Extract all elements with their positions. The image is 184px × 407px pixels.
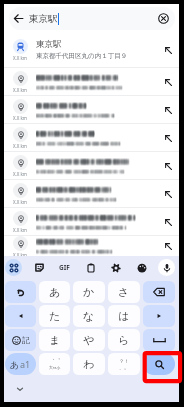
button[interactable]: X.X km bbox=[4, 124, 179, 151]
staticText: ま bbox=[49, 333, 61, 347]
button[interactable]: Move cursor left bbox=[5, 305, 36, 327]
button[interactable]: Back bbox=[9, 7, 175, 30]
staticText: X.X km bbox=[13, 143, 27, 149]
button[interactable]: Insert suggestion bbox=[157, 211, 179, 233]
button[interactable]: X.X km bbox=[4, 68, 179, 95]
button[interactable]: Punctuation bbox=[108, 353, 140, 375]
button[interactable]: は bbox=[108, 305, 140, 327]
button[interactable]: Stickers bbox=[31, 259, 48, 276]
staticText: や bbox=[83, 333, 95, 347]
button[interactable]: さ bbox=[108, 281, 140, 303]
staticText: あ bbox=[49, 285, 61, 299]
button[interactable]: ま bbox=[39, 329, 70, 351]
button[interactable]: な bbox=[73, 305, 105, 327]
button[interactable]: Space bbox=[143, 329, 175, 351]
staticText: あ bbox=[10, 359, 20, 370]
button[interactable]: X.X km bbox=[4, 180, 179, 207]
button[interactable]: Hide keyboard bbox=[4, 375, 179, 402]
staticText: ゛゜ bbox=[49, 358, 61, 365]
staticText: X.X km bbox=[13, 199, 27, 205]
staticText: X.X km bbox=[13, 227, 27, 233]
staticText: 東京都千代田区丸の内１丁目９ bbox=[36, 52, 128, 60]
staticText: ？！ bbox=[119, 358, 129, 364]
button[interactable]: Switch input mode bbox=[5, 353, 36, 375]
button[interactable]: Insert suggestion bbox=[157, 155, 179, 177]
button[interactable]: Theme bbox=[133, 259, 150, 276]
button[interactable]: X.X km bbox=[4, 96, 179, 123]
staticText: 記 bbox=[22, 335, 30, 345]
button[interactable]: か bbox=[73, 281, 105, 303]
staticText: わ bbox=[83, 357, 95, 371]
staticText: は bbox=[118, 309, 130, 323]
button[interactable]: Clipboard bbox=[82, 259, 99, 276]
button[interactable]: X.X km bbox=[4, 208, 179, 235]
button[interactable]: Undo bbox=[5, 281, 36, 303]
button[interactable]: Backspace bbox=[143, 281, 175, 303]
button[interactable]: ら bbox=[108, 329, 140, 351]
staticText: な bbox=[83, 309, 95, 323]
staticText: た bbox=[49, 309, 61, 323]
staticText: X.X km bbox=[13, 87, 27, 93]
staticText: GIF bbox=[59, 263, 70, 272]
button[interactable]: Insert suggestion bbox=[157, 99, 179, 121]
staticText: 東京駅 bbox=[36, 39, 62, 50]
staticText: 東京駅 bbox=[29, 13, 58, 25]
staticText: ら bbox=[118, 333, 130, 347]
button[interactable]: Voice input bbox=[158, 259, 175, 276]
button[interactable]: Back bbox=[9, 9, 28, 28]
staticText: さ bbox=[118, 285, 130, 299]
button[interactable]: Insert suggestion bbox=[157, 127, 179, 149]
button[interactable]: X.X km bbox=[4, 236, 179, 256]
button[interactable]: Insert suggestion bbox=[157, 183, 179, 205]
staticText: X.X km bbox=[13, 171, 27, 177]
button[interactable]: Emoji and symbols bbox=[5, 329, 36, 351]
button[interactable]: Apps bbox=[5, 259, 22, 276]
staticText: か bbox=[83, 285, 95, 299]
button[interactable]: Insert suggestion bbox=[157, 71, 179, 93]
staticText: a1 bbox=[20, 358, 31, 370]
button[interactable]: Move cursor right bbox=[143, 305, 175, 327]
button[interactable]: Settings bbox=[107, 259, 124, 276]
button[interactable]: Insert suggestion bbox=[157, 236, 179, 256]
button[interactable]: X.X km bbox=[4, 32, 179, 67]
button[interactable]: や bbox=[73, 329, 105, 351]
staticText: X.X km bbox=[13, 115, 27, 121]
button[interactable]: GIF bbox=[56, 259, 73, 276]
button[interactable]: わ bbox=[73, 353, 105, 375]
staticText: X.X km bbox=[13, 55, 27, 61]
staticText: 、。 bbox=[119, 364, 129, 370]
staticText: X.X km bbox=[13, 252, 27, 256]
staticText: 大⇔小 bbox=[49, 365, 61, 370]
button[interactable]: X.X km bbox=[4, 152, 179, 179]
button[interactable]: あ bbox=[39, 281, 70, 303]
button[interactable]: た bbox=[39, 305, 70, 327]
button[interactable]: Clear text bbox=[154, 9, 173, 28]
button[interactable]: Insert suggestion bbox=[157, 39, 179, 61]
button[interactable]: Search bbox=[143, 353, 175, 375]
button[interactable]: Dakuten and small kana bbox=[39, 353, 70, 375]
